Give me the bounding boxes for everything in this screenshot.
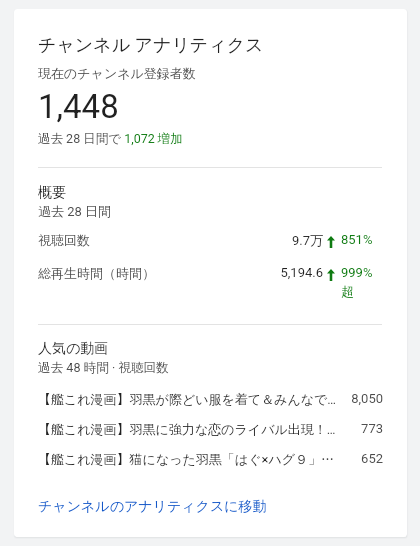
staticText: 過去 48 時間 · 視聴回数 bbox=[38, 360, 169, 376]
staticText: 999%超 bbox=[341, 265, 374, 300]
staticText: 人気の動画 bbox=[38, 340, 109, 358]
staticText: 過去 28 日間 bbox=[38, 203, 112, 219]
staticText: 【艦これ漫画】羽黒が際どい服を着て＆みんなで… bbox=[38, 391, 338, 407]
staticText: 視聴回数 bbox=[38, 232, 90, 248]
staticText: 9.7万 bbox=[223, 232, 323, 248]
button[interactable]: 【艦これ漫画】猫になった羽黒「はぐ×ハグ９」よ… bbox=[38, 451, 383, 477]
button[interactable]: 【艦これ漫画】羽黒が際どい服を着て＆みんなで… bbox=[38, 391, 383, 417]
staticText: 773 bbox=[293, 421, 383, 436]
staticText: 851% bbox=[341, 232, 374, 247]
staticText: 現在のチャンネル登録者数 bbox=[38, 65, 196, 81]
button[interactable]: チャンネルのアナリティクスに移動 bbox=[32, 490, 273, 524]
staticText: 652 bbox=[293, 451, 383, 466]
button[interactable]: 総再生時間（時間） bbox=[38, 265, 382, 305]
staticText: 5,194.6 bbox=[223, 265, 323, 280]
staticText: チャンネルのアナリティクスに移動 bbox=[38, 498, 267, 516]
staticText: 1,448 bbox=[38, 87, 119, 126]
staticText: チャンネル アナリティクス bbox=[38, 34, 264, 57]
staticText: 過去 28 日間で 1,072 増加 bbox=[38, 131, 183, 147]
button[interactable]: 【艦これ漫画】羽黒に強力な恋のライバル出現！… bbox=[38, 421, 383, 447]
button[interactable]: 視聴回数 bbox=[38, 232, 382, 272]
staticText: 【艦これ漫画】猫になった羽黒「はぐ×ハグ９」よ… bbox=[38, 451, 338, 467]
staticText: 総再生時間（時間） bbox=[38, 265, 155, 281]
staticText: 【艦これ漫画】羽黒に強力な恋のライバル出現！… bbox=[38, 421, 338, 437]
staticText: 概要 bbox=[38, 184, 66, 202]
staticText: 8,050 bbox=[293, 391, 383, 406]
